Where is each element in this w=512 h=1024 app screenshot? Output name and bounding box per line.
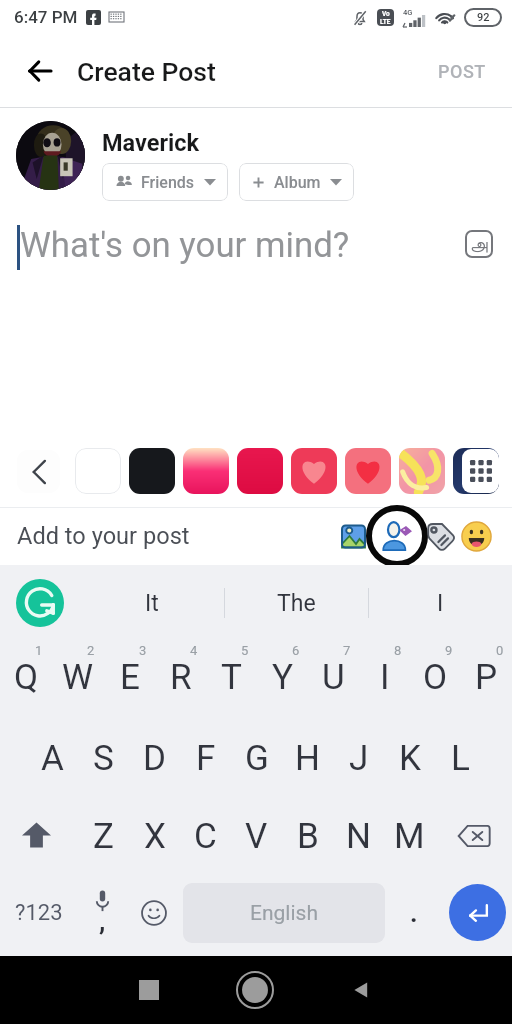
- button[interactable]: K: [384, 719, 435, 797]
- button[interactable]: Back: [339, 968, 383, 1012]
- staticText: 6: [292, 643, 300, 658]
- button[interactable]: Home: [233, 968, 277, 1012]
- staticText: Add to your post: [17, 522, 190, 550]
- staticText: 4: [190, 643, 198, 658]
- staticText: D: [143, 738, 166, 779]
- button[interactable]: F: [180, 719, 231, 797]
- button[interactable]: N: [333, 797, 384, 875]
- staticText: Maverick: [102, 129, 200, 157]
- button[interactable]: H: [282, 719, 333, 797]
- button[interactable]: 0: [461, 641, 512, 719]
- button[interactable]: It: [80, 565, 224, 641]
- button[interactable]: 5: [206, 641, 257, 719]
- button[interactable]: Back: [17, 48, 63, 94]
- staticText: M: [394, 816, 425, 857]
- button[interactable]: M: [384, 797, 435, 875]
- button[interactable]: Previous backgrounds: [17, 450, 60, 493]
- button[interactable]: X: [129, 797, 180, 875]
- button[interactable]: Album: [239, 163, 354, 201]
- button[interactable]: S: [78, 719, 129, 797]
- button[interactable]: [129, 448, 175, 494]
- button[interactable]: Friends: [102, 163, 228, 201]
- button[interactable]: Feeling: [460, 520, 492, 552]
- staticText: R: [170, 657, 192, 698]
- staticText: 92: [477, 11, 490, 24]
- button[interactable]: C: [180, 797, 231, 875]
- button[interactable]: POST: [432, 55, 492, 88]
- staticText: ?123: [15, 900, 63, 926]
- button[interactable]: [399, 448, 445, 494]
- button[interactable]: Tag: [423, 520, 455, 552]
- staticText: 9: [445, 643, 453, 658]
- button[interactable]: Tag people: [381, 520, 413, 552]
- button[interactable]: L: [435, 719, 486, 797]
- button[interactable]: [345, 448, 391, 494]
- staticText: Create Post: [77, 56, 216, 87]
- staticText: A: [41, 738, 64, 779]
- button[interactable]: Enter: [449, 884, 506, 941]
- button[interactable]: V: [231, 797, 282, 875]
- button[interactable]: 4: [155, 641, 206, 719]
- button[interactable]: .: [385, 872, 442, 953]
- button[interactable]: I: [369, 565, 512, 641]
- staticText: .: [410, 898, 418, 928]
- button[interactable]: Recents: [127, 968, 171, 1012]
- button[interactable]: Change keyboard language: [460, 225, 498, 263]
- button[interactable]: G: [231, 719, 282, 797]
- staticText: Q: [14, 657, 39, 698]
- staticText: P: [475, 657, 498, 698]
- staticText: 6:47 PM: [14, 7, 78, 27]
- staticText: அ: [470, 236, 488, 253]
- staticText: Vo: [382, 10, 390, 18]
- staticText: 8: [394, 643, 402, 658]
- staticText: G: [245, 738, 269, 779]
- button[interactable]: 7: [308, 641, 359, 719]
- staticText: Friends: [141, 173, 195, 192]
- button[interactable]: 2: [52, 641, 104, 719]
- staticText: K: [399, 738, 421, 779]
- staticText: S: [93, 738, 114, 779]
- button[interactable]: 9: [410, 641, 461, 719]
- staticText: C: [194, 816, 217, 857]
- button[interactable]: 1: [0, 641, 52, 719]
- staticText: 2: [87, 643, 95, 658]
- button[interactable]: [183, 448, 229, 494]
- button[interactable]: Photo: [337, 520, 369, 552]
- button[interactable]: Grammarly: [16, 579, 64, 627]
- button[interactable]: [237, 448, 283, 494]
- staticText: W: [62, 657, 94, 698]
- button[interactable]: The: [225, 565, 368, 641]
- button[interactable]: More backgrounds: [453, 448, 499, 494]
- button[interactable]: B: [282, 797, 333, 875]
- button[interactable]: A: [27, 719, 78, 797]
- staticText: Y: [272, 657, 294, 698]
- button[interactable]: J: [333, 719, 384, 797]
- button[interactable]: D: [129, 719, 180, 797]
- staticText: 7: [343, 643, 351, 658]
- button[interactable]: Z: [78, 797, 129, 875]
- button[interactable]: Shift: [0, 797, 78, 875]
- button[interactable]: English: [183, 883, 385, 943]
- button[interactable]: [75, 448, 121, 494]
- staticText: O: [423, 657, 448, 698]
- button[interactable]: ?123: [0, 872, 78, 953]
- staticText: 4G: [403, 8, 413, 17]
- button[interactable]: Voice input: [78, 872, 125, 953]
- staticText: T: [221, 657, 242, 698]
- staticText: What's on your mind?: [20, 225, 350, 266]
- button[interactable]: 6: [257, 641, 308, 719]
- staticText: E: [120, 657, 140, 698]
- staticText: Album: [274, 173, 321, 192]
- staticText: L: [451, 738, 470, 779]
- staticText: 0: [496, 643, 504, 658]
- button[interactable]: 3: [104, 641, 155, 719]
- staticText: H: [295, 738, 320, 779]
- button[interactable]: [291, 448, 337, 494]
- button[interactable]: Backspace: [435, 797, 512, 875]
- button[interactable]: Emoji: [125, 872, 183, 953]
- staticText: The: [277, 590, 316, 617]
- staticText: B: [297, 816, 319, 857]
- staticText: LTE: [380, 18, 391, 26]
- button[interactable]: 8: [359, 641, 410, 719]
- staticText: Z: [93, 816, 114, 857]
